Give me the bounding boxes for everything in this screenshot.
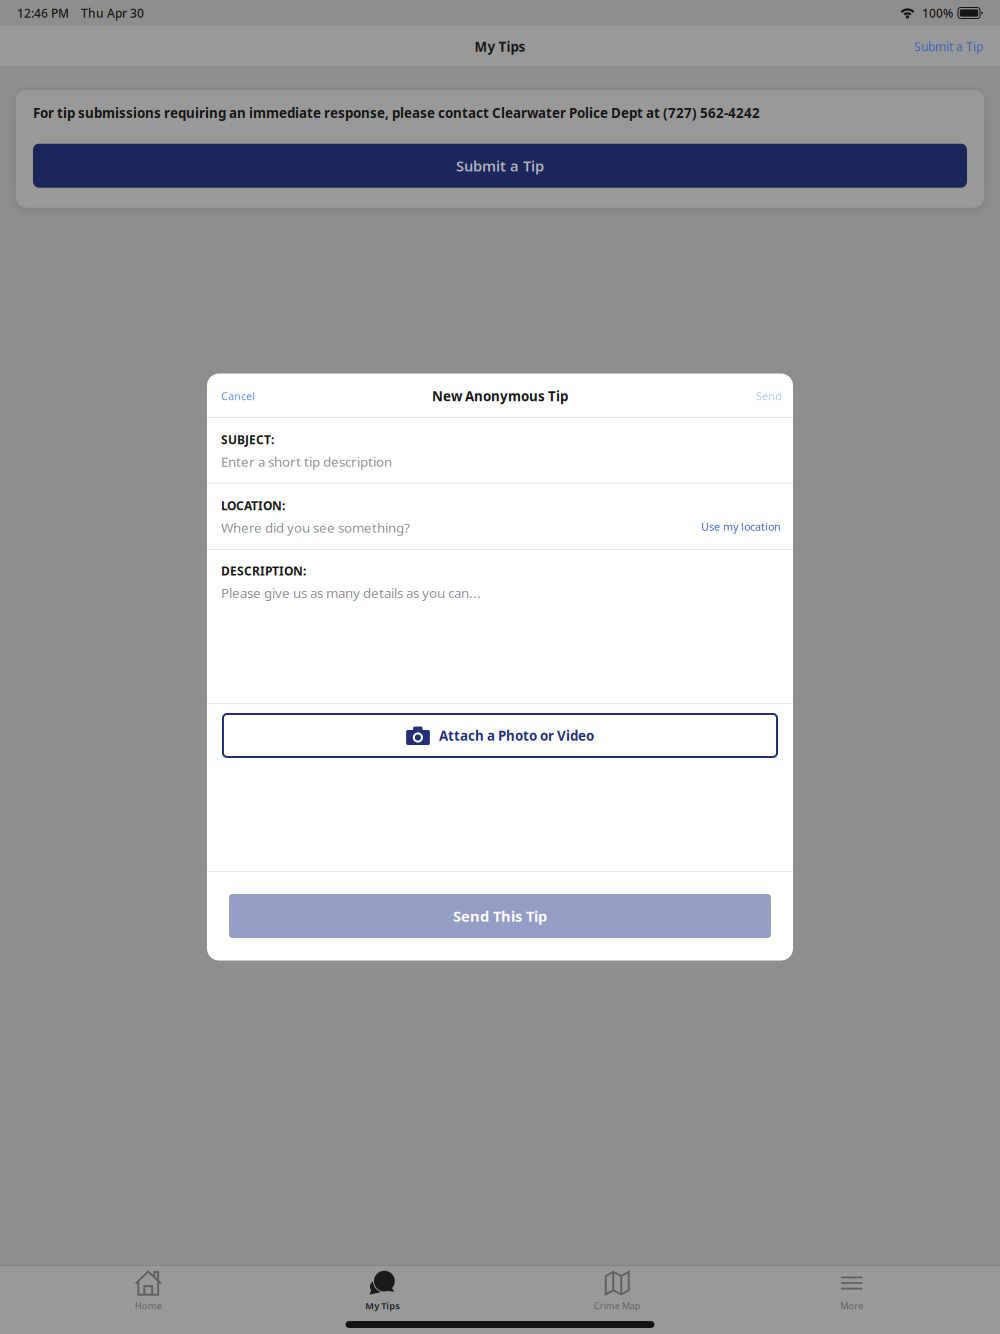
staticText: My Tips: [365, 1299, 400, 1312]
staticText: SUBJECT:: [221, 432, 274, 448]
staticText: LOCATION:: [221, 498, 285, 514]
button[interactable]: Use my location: [701, 519, 781, 534]
staticText: Submit a Tip: [456, 156, 544, 175]
staticText: More: [840, 1299, 863, 1312]
staticText: Submit a Tip: [914, 38, 983, 54]
button[interactable]: Submit a Tip: [914, 38, 983, 54]
button[interactable]: Crime Map: [500, 1265, 734, 1334]
button[interactable]: Send: [756, 389, 782, 403]
staticText: Send This Tip: [453, 906, 547, 926]
staticText: Attach a Photo or Video: [439, 727, 594, 744]
button[interactable]: Attach a Photo or Video: [223, 714, 777, 757]
staticText: 100%: [922, 5, 953, 21]
staticText: New Anonymous Tip: [432, 387, 568, 405]
staticText: Cancel: [221, 389, 255, 403]
staticText: For tip submissions requiring an immedia…: [33, 104, 760, 122]
button[interactable]: Cancel: [221, 389, 255, 403]
staticText: Send: [756, 389, 782, 403]
button[interactable]: More: [734, 1265, 969, 1334]
staticText: DESCRIPTION:: [221, 563, 306, 579]
staticText: 12:46 PM: [17, 5, 69, 21]
button[interactable]: Submit a Tip: [33, 144, 967, 188]
staticText: My Tips: [474, 38, 525, 55]
staticText: Home: [135, 1299, 162, 1312]
staticText: Use my location: [701, 519, 781, 534]
button[interactable]: Send This Tip: [229, 894, 771, 938]
staticText: Crime Map: [594, 1299, 641, 1312]
button[interactable]: My Tips: [265, 1265, 500, 1334]
staticText: Enter a short tip description: [221, 453, 392, 470]
staticText: Please give us as many details as you ca…: [221, 584, 481, 602]
staticText: Thu Apr 30: [81, 5, 144, 21]
staticText: Where did you see something?: [221, 519, 410, 536]
button[interactable]: Home: [31, 1265, 265, 1334]
